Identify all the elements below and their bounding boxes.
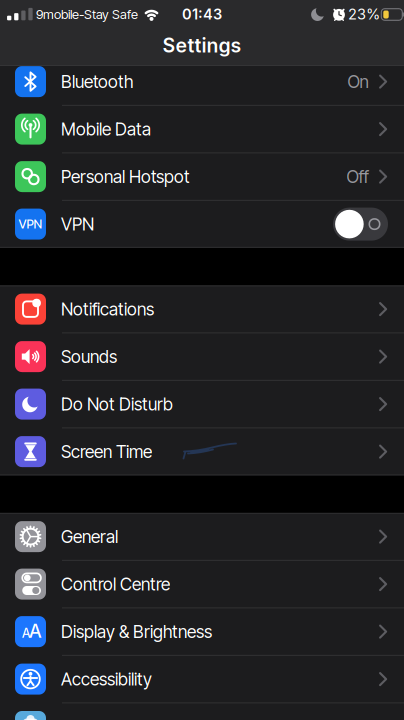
button[interactable]: A (0, 608, 404, 655)
button[interactable]: Sounds (0, 333, 404, 380)
staticText: 01:43 (182, 5, 222, 23)
staticText: General (61, 526, 118, 547)
button[interactable]: VPN (0, 200, 404, 248)
staticText: VPN (18, 217, 42, 232)
staticText: A (22, 626, 31, 641)
staticText: Bluetooth (61, 71, 133, 92)
button[interactable]: Do Not Disturb (0, 380, 404, 428)
button[interactable]: Notifications (0, 285, 404, 333)
staticText: Display & Brightness (61, 621, 212, 642)
staticText: Screen Time (61, 441, 152, 462)
staticText: On (347, 71, 368, 92)
staticText: Sounds (61, 346, 117, 367)
staticText: VPN (61, 214, 94, 235)
button[interactable]: Bluetooth (0, 58, 404, 105)
button[interactable]: Screen Time (0, 428, 404, 475)
button[interactable]: General (0, 513, 404, 560)
button[interactable]: Control Centre (0, 560, 404, 608)
staticText: Notifications (61, 299, 154, 320)
staticText: Personal Hotspot (61, 166, 190, 187)
button[interactable]: Accessibility (0, 655, 404, 703)
staticText: Accessibility (61, 669, 152, 690)
button[interactable]: Personal Hotspot (0, 153, 404, 200)
staticText: Settings (162, 34, 241, 57)
staticText: 9mobile-Stay Safe (36, 6, 138, 22)
staticText: 23% (348, 5, 380, 23)
staticText: Mobile Data (61, 119, 151, 140)
staticText: Control Centre (61, 574, 170, 595)
staticText: Off (346, 166, 368, 187)
staticText: A (29, 620, 42, 642)
button[interactable]: Mobile Data (0, 105, 404, 153)
staticText: Do Not Disturb (61, 394, 173, 415)
